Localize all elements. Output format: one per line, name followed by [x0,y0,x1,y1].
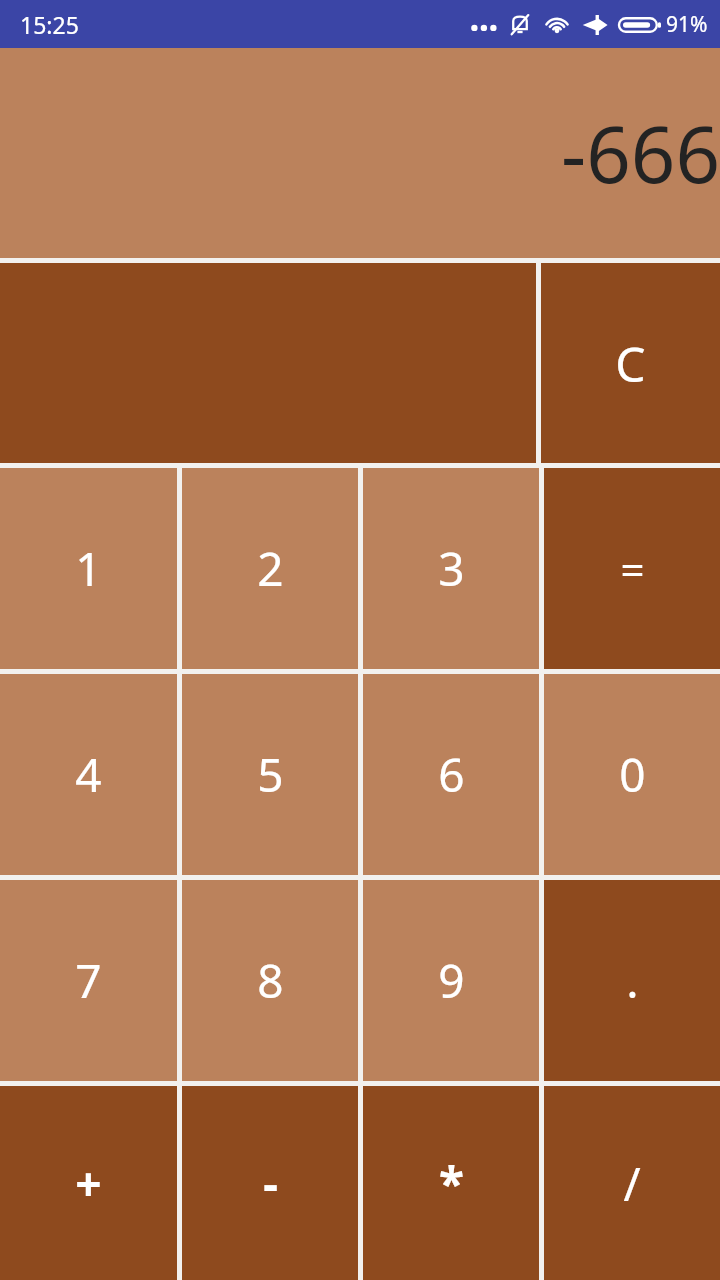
staticText: . [626,949,639,1012]
staticText: / [623,1152,641,1215]
button[interactable]: 9 [363,880,539,1081]
button[interactable]: 0 [544,674,720,875]
staticText: C [615,331,646,396]
button[interactable]: 5 [182,674,358,875]
staticText: 2 [257,537,284,600]
staticText: 4 [75,743,102,806]
staticText: -666 [561,100,720,206]
button[interactable]: 1 [0,468,177,669]
button[interactable]: 7 [0,880,177,1081]
staticText: 0 [619,743,646,806]
button[interactable]: . [544,880,720,1081]
staticText: 15:25 [20,9,79,40]
button[interactable]: 4 [0,674,177,875]
button[interactable]: / [544,1086,720,1280]
staticText: + [75,1152,102,1215]
button[interactable]: - [182,1086,358,1280]
staticText: 1 [75,537,102,600]
staticText: 91% [666,10,708,39]
staticText: * [439,1152,464,1215]
staticText: = [620,540,645,597]
button[interactable]: 3 [363,468,539,669]
staticText: 9 [438,949,465,1012]
staticText: 5 [257,743,284,806]
button[interactable]: * [363,1086,539,1280]
button[interactable]: 2 [182,468,358,669]
staticText: 6 [438,743,465,806]
button[interactable]: C [541,263,720,463]
button[interactable]: = [544,468,720,669]
staticText: - [263,1152,278,1215]
staticText: 3 [438,537,465,600]
button[interactable]: 6 [363,674,539,875]
button[interactable]: 8 [182,880,358,1081]
staticText: 7 [75,949,102,1012]
staticText: 8 [257,949,284,1012]
button[interactable]: + [0,1086,177,1280]
